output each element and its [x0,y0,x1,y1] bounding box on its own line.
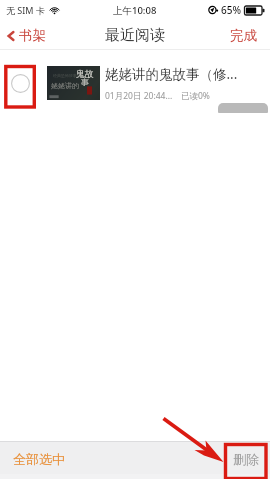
staticText: 65% [221,3,241,17]
button[interactable]: 鬼故 [0,61,270,105]
staticText: 事 [81,77,89,87]
staticText: 无 SIM 卡 [6,4,45,16]
staticText: 经典恐怖故事集 [53,73,81,78]
button[interactable]: 删除 [220,441,270,476]
staticText: 上午10:08 [113,4,157,17]
button[interactable]: 全部选中 [0,441,78,476]
staticText: 01月20日 20:44... [105,90,173,102]
staticText: 最近阅读 [105,26,165,45]
staticText: 已读0% [181,90,210,102]
staticText: 书架 [19,27,46,44]
button[interactable]: 完成 [220,22,270,49]
staticText: 鬼故 [76,68,94,79]
staticText: 姥姥讲的鬼故事（修... [105,65,238,83]
button[interactable]: 书架 [0,22,54,49]
staticText: 姥姥讲的 [51,81,79,90]
